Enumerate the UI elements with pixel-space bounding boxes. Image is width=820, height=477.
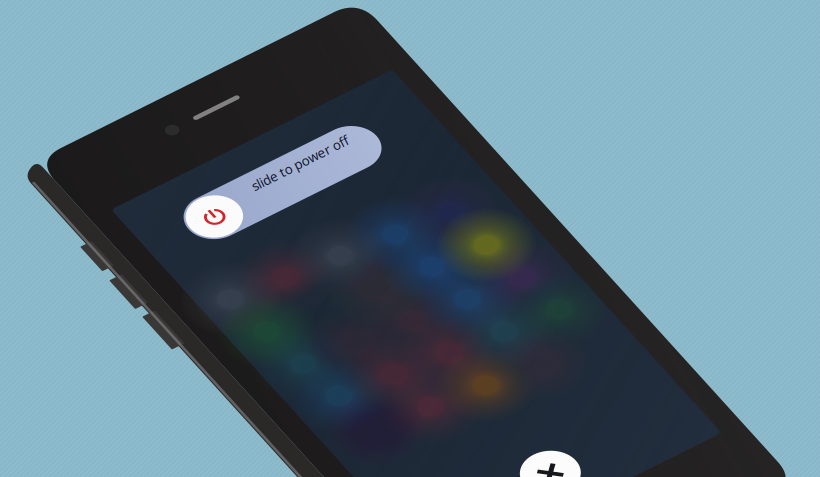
button[interactable]: slide to power off	[0, 0, 820, 477]
staticText: slide to power off	[246, 154, 353, 172]
